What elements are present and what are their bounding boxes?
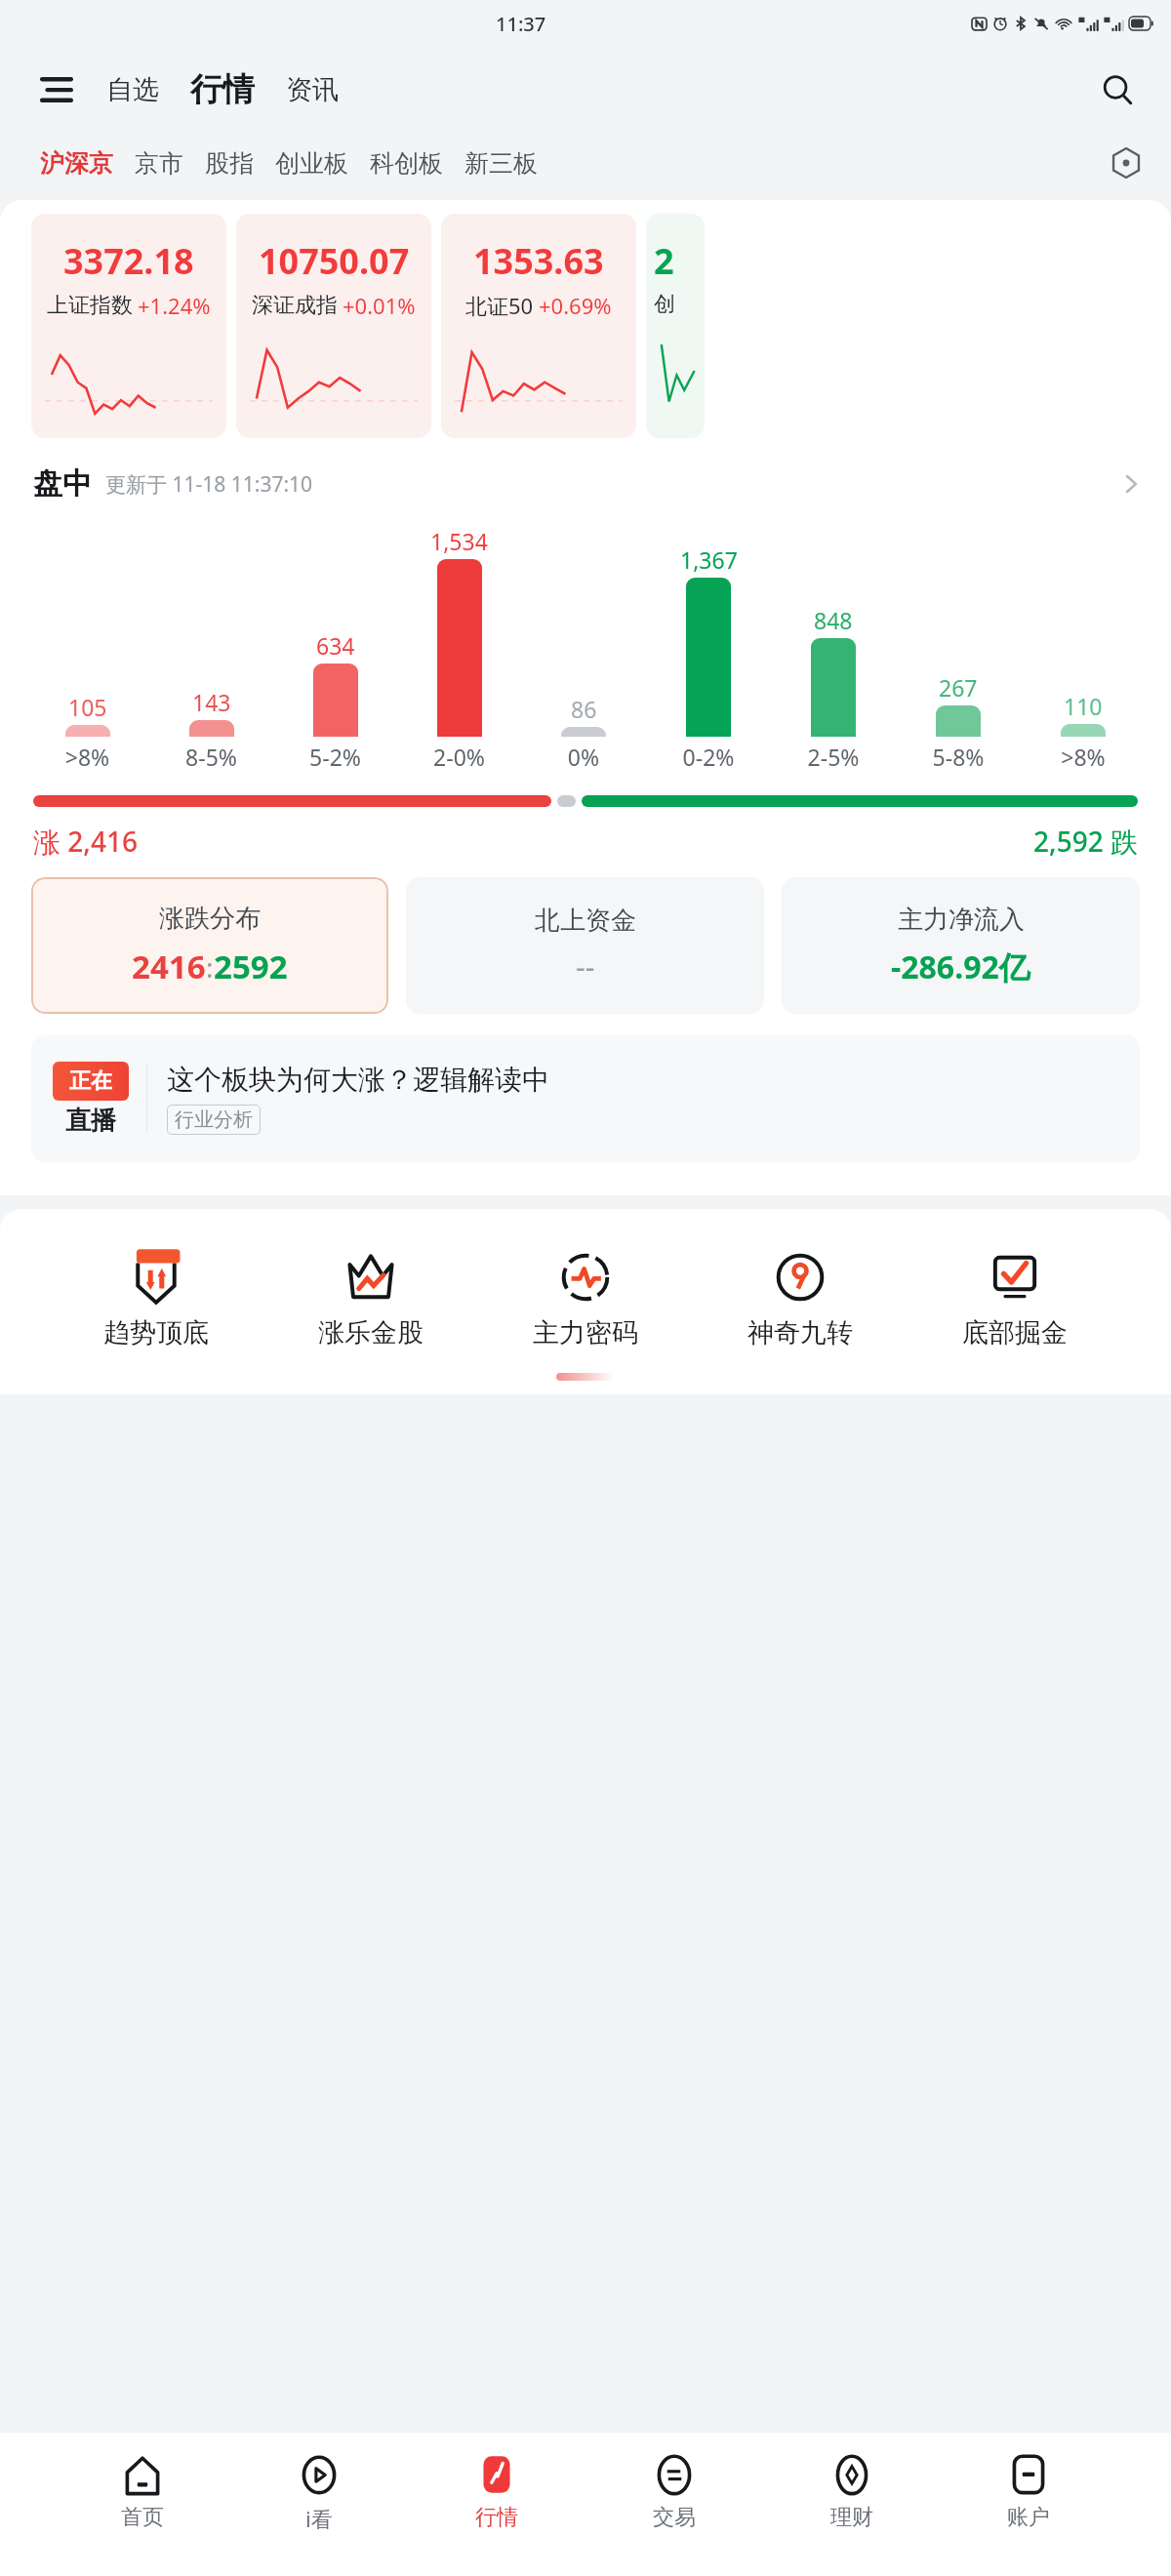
staticText: 这个板块为何大涨？逻辑解读中 — [167, 1063, 549, 1097]
staticText: 深证成指 — [252, 292, 338, 319]
button[interactable]: 3372.18 — [31, 214, 226, 438]
staticText: 神奇九转 — [747, 1316, 853, 1349]
button[interactable]: 资讯 — [282, 67, 343, 112]
staticText: 沪深京 — [40, 148, 113, 179]
staticText: >8% — [1021, 742, 1146, 772]
button[interactable]: 涨跌分布 — [31, 877, 388, 1014]
staticText: 3372.18 — [63, 237, 194, 285]
staticText: 行情 — [190, 69, 255, 110]
button[interactable]: 10750.07 — [236, 214, 431, 438]
button[interactable]: 首页 — [107, 2449, 178, 2533]
staticText: 267 — [939, 672, 978, 703]
staticText: 股指 — [205, 148, 254, 179]
staticText: 理财 — [830, 2504, 873, 2531]
button[interactable]: 交易 — [639, 2449, 709, 2533]
staticText: 京市 — [135, 148, 183, 179]
staticText: 2-5% — [771, 742, 896, 772]
staticText: 自选 — [106, 73, 159, 106]
button[interactable]: 股指 — [194, 141, 264, 186]
staticText: 上证指数 — [47, 292, 133, 319]
staticText: +0.69% — [539, 291, 612, 320]
staticText: 主力密码 — [533, 1316, 638, 1349]
staticText: -286.92亿 — [891, 946, 1030, 988]
staticText: +0.01% — [343, 291, 416, 320]
staticText: 交易 — [653, 2504, 696, 2531]
button[interactable]: 底部掘金 — [956, 1238, 1073, 1353]
button[interactable]: 主力密码 — [527, 1238, 644, 1353]
staticText: 1,367 — [680, 544, 738, 575]
staticText: : — [206, 948, 214, 986]
staticText: 0-2% — [646, 742, 771, 772]
staticText: 11:37 — [496, 11, 546, 37]
staticText: >8% — [25, 742, 149, 772]
button[interactable]: i看 — [284, 2449, 354, 2535]
staticText: 资讯 — [286, 73, 339, 106]
staticText: 正在 — [69, 1067, 112, 1095]
staticText: 涨乐金股 — [318, 1316, 424, 1349]
button[interactable]: 正在 — [31, 1035, 1140, 1162]
button[interactable]: 自选 — [102, 67, 163, 112]
staticText: 8-5% — [149, 742, 273, 772]
staticText: 10750.07 — [259, 237, 410, 285]
staticText: 首页 — [121, 2504, 164, 2531]
staticText: 5-2% — [273, 742, 397, 772]
staticText: 行情 — [475, 2504, 518, 2531]
button[interactable]: 2 — [646, 214, 705, 438]
staticText: 86 — [571, 694, 597, 724]
staticText: 账户 — [1007, 2504, 1050, 2531]
button[interactable]: 盘中 — [0, 454, 1171, 514]
staticText: 0% — [521, 742, 646, 772]
staticText: 北上资金 — [535, 905, 636, 937]
staticText: 盘中 — [33, 465, 92, 503]
button[interactable]: 神奇九转 — [742, 1238, 859, 1353]
staticText: 创 — [654, 291, 675, 318]
staticText: 105 — [68, 692, 107, 722]
staticText: 5-8% — [896, 742, 1021, 772]
staticText: 行业分析 — [175, 1107, 253, 1132]
button[interactable]: Search — [1093, 65, 1142, 114]
staticText: 新三板 — [464, 148, 538, 179]
staticText: 趋势顶底 — [103, 1316, 209, 1349]
button[interactable]: 账户 — [993, 2449, 1064, 2533]
button[interactable]: 涨乐金股 — [312, 1238, 429, 1353]
button[interactable]: 沪深京 — [29, 141, 124, 186]
staticText: +1.24% — [138, 291, 211, 320]
staticText: 2 — [654, 237, 674, 285]
staticText: 2592 — [214, 945, 288, 988]
button[interactable]: 1353.63 — [441, 214, 636, 438]
button[interactable]: 趋势顶底 — [98, 1238, 215, 1353]
staticText: 北证50 — [465, 291, 534, 320]
button[interactable]: 行情 — [462, 2449, 532, 2533]
staticText: i看 — [305, 2504, 333, 2533]
staticText: 科创板 — [370, 148, 443, 179]
button[interactable]: 理财 — [817, 2449, 887, 2533]
button[interactable]: Menu — [33, 66, 80, 113]
staticText: 848 — [814, 605, 853, 635]
button[interactable]: 北上资金 — [406, 877, 764, 1014]
staticText: 2-0% — [397, 742, 521, 772]
button[interactable]: 创业板 — [264, 141, 359, 186]
staticText: 634 — [316, 630, 355, 661]
button[interactable]: 主力净流入 — [782, 877, 1140, 1014]
staticText: 直播 — [65, 1105, 116, 1137]
staticText: 110 — [1064, 691, 1103, 721]
button[interactable]: 行情 — [186, 67, 259, 112]
staticText: 涨跌分布 — [159, 903, 261, 935]
staticText: 1353.63 — [473, 237, 604, 285]
button[interactable]: 科创板 — [359, 141, 454, 186]
staticText: -- — [576, 946, 595, 986]
button[interactable]: More categories — [1103, 140, 1150, 186]
button[interactable]: 京市 — [124, 141, 194, 186]
staticText: 更新于 11-18 11:37:10 — [105, 470, 313, 499]
button[interactable]: 新三板 — [454, 141, 548, 186]
staticText: 2416 — [132, 945, 206, 988]
staticText: 143 — [192, 687, 231, 717]
staticText: 2,592 跌 — [1033, 823, 1138, 860]
staticText: 1,534 — [430, 526, 488, 556]
staticText: 主力净流入 — [898, 904, 1025, 936]
staticText: 涨 2,416 — [33, 823, 138, 860]
staticText: 底部掘金 — [962, 1316, 1068, 1349]
staticText: 创业板 — [275, 148, 348, 179]
